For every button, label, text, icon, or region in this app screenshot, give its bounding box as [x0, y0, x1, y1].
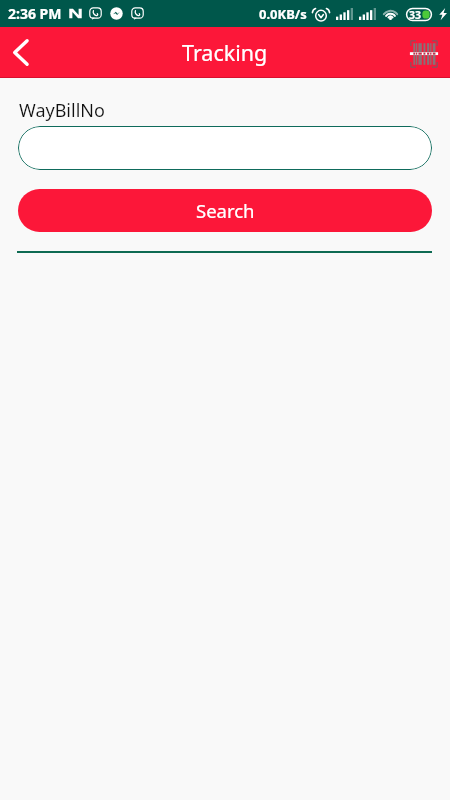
button[interactable]: Scan barcode [397, 27, 450, 78]
staticText: 2:36 PM [8, 4, 62, 23]
button[interactable]: Search [18, 189, 432, 232]
staticText: WayBillNo [19, 98, 105, 123]
staticText: 33 [409, 8, 422, 21]
button[interactable]: Back [0, 27, 40, 78]
staticText: Tracking [182, 38, 268, 67]
staticText: Search [196, 198, 255, 223]
staticText: 0.0KB/s [259, 5, 307, 23]
button[interactable] [18, 126, 432, 170]
